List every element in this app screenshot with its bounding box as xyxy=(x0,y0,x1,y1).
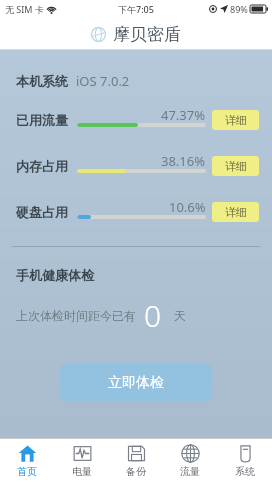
button[interactable]: 系统 xyxy=(218,438,272,484)
staticText: 无 SIM 卡 xyxy=(5,3,44,15)
staticText: 详细 xyxy=(225,205,247,219)
staticText: 下午7:05 xyxy=(118,3,154,15)
button[interactable]: 详细 xyxy=(212,156,259,176)
button[interactable]: 首页 xyxy=(0,438,54,484)
staticText: 备份 xyxy=(126,465,146,478)
staticText: 本机系统 xyxy=(16,73,68,89)
staticText: 硬盘占用 xyxy=(16,204,68,220)
button[interactable]: 详细 xyxy=(212,202,259,222)
staticText: 手机健康体检 xyxy=(16,267,94,283)
staticText: 内存占用 xyxy=(16,158,68,174)
staticText: 10.6% xyxy=(169,198,206,216)
staticText: 首页 xyxy=(17,465,37,478)
button[interactable]: 详细 xyxy=(212,110,259,130)
button[interactable]: 备份 xyxy=(109,438,163,484)
staticText: 详细 xyxy=(225,113,247,127)
staticText: 38.16% xyxy=(161,152,206,170)
staticText: 47.37% xyxy=(161,106,206,124)
staticText: 89% xyxy=(230,3,248,15)
staticText: 流量 xyxy=(180,465,200,478)
staticText: iOS 7.0.2 xyxy=(76,72,130,90)
staticText: 电量 xyxy=(72,465,92,478)
staticText: 天 xyxy=(174,308,186,323)
staticText: 详细 xyxy=(225,159,247,173)
staticText: 0 xyxy=(144,295,162,336)
staticText: 已用流量 xyxy=(16,112,68,128)
button[interactable]: 立即体检 xyxy=(60,364,212,401)
button[interactable]: 电量 xyxy=(55,438,109,484)
button[interactable]: 流量 xyxy=(163,438,217,484)
staticText: 系统 xyxy=(235,465,255,478)
staticText: 立即体检 xyxy=(108,374,164,392)
staticText: 上次体检时间距今已有 xyxy=(16,308,136,323)
staticText: 摩贝密盾 xyxy=(113,24,181,45)
